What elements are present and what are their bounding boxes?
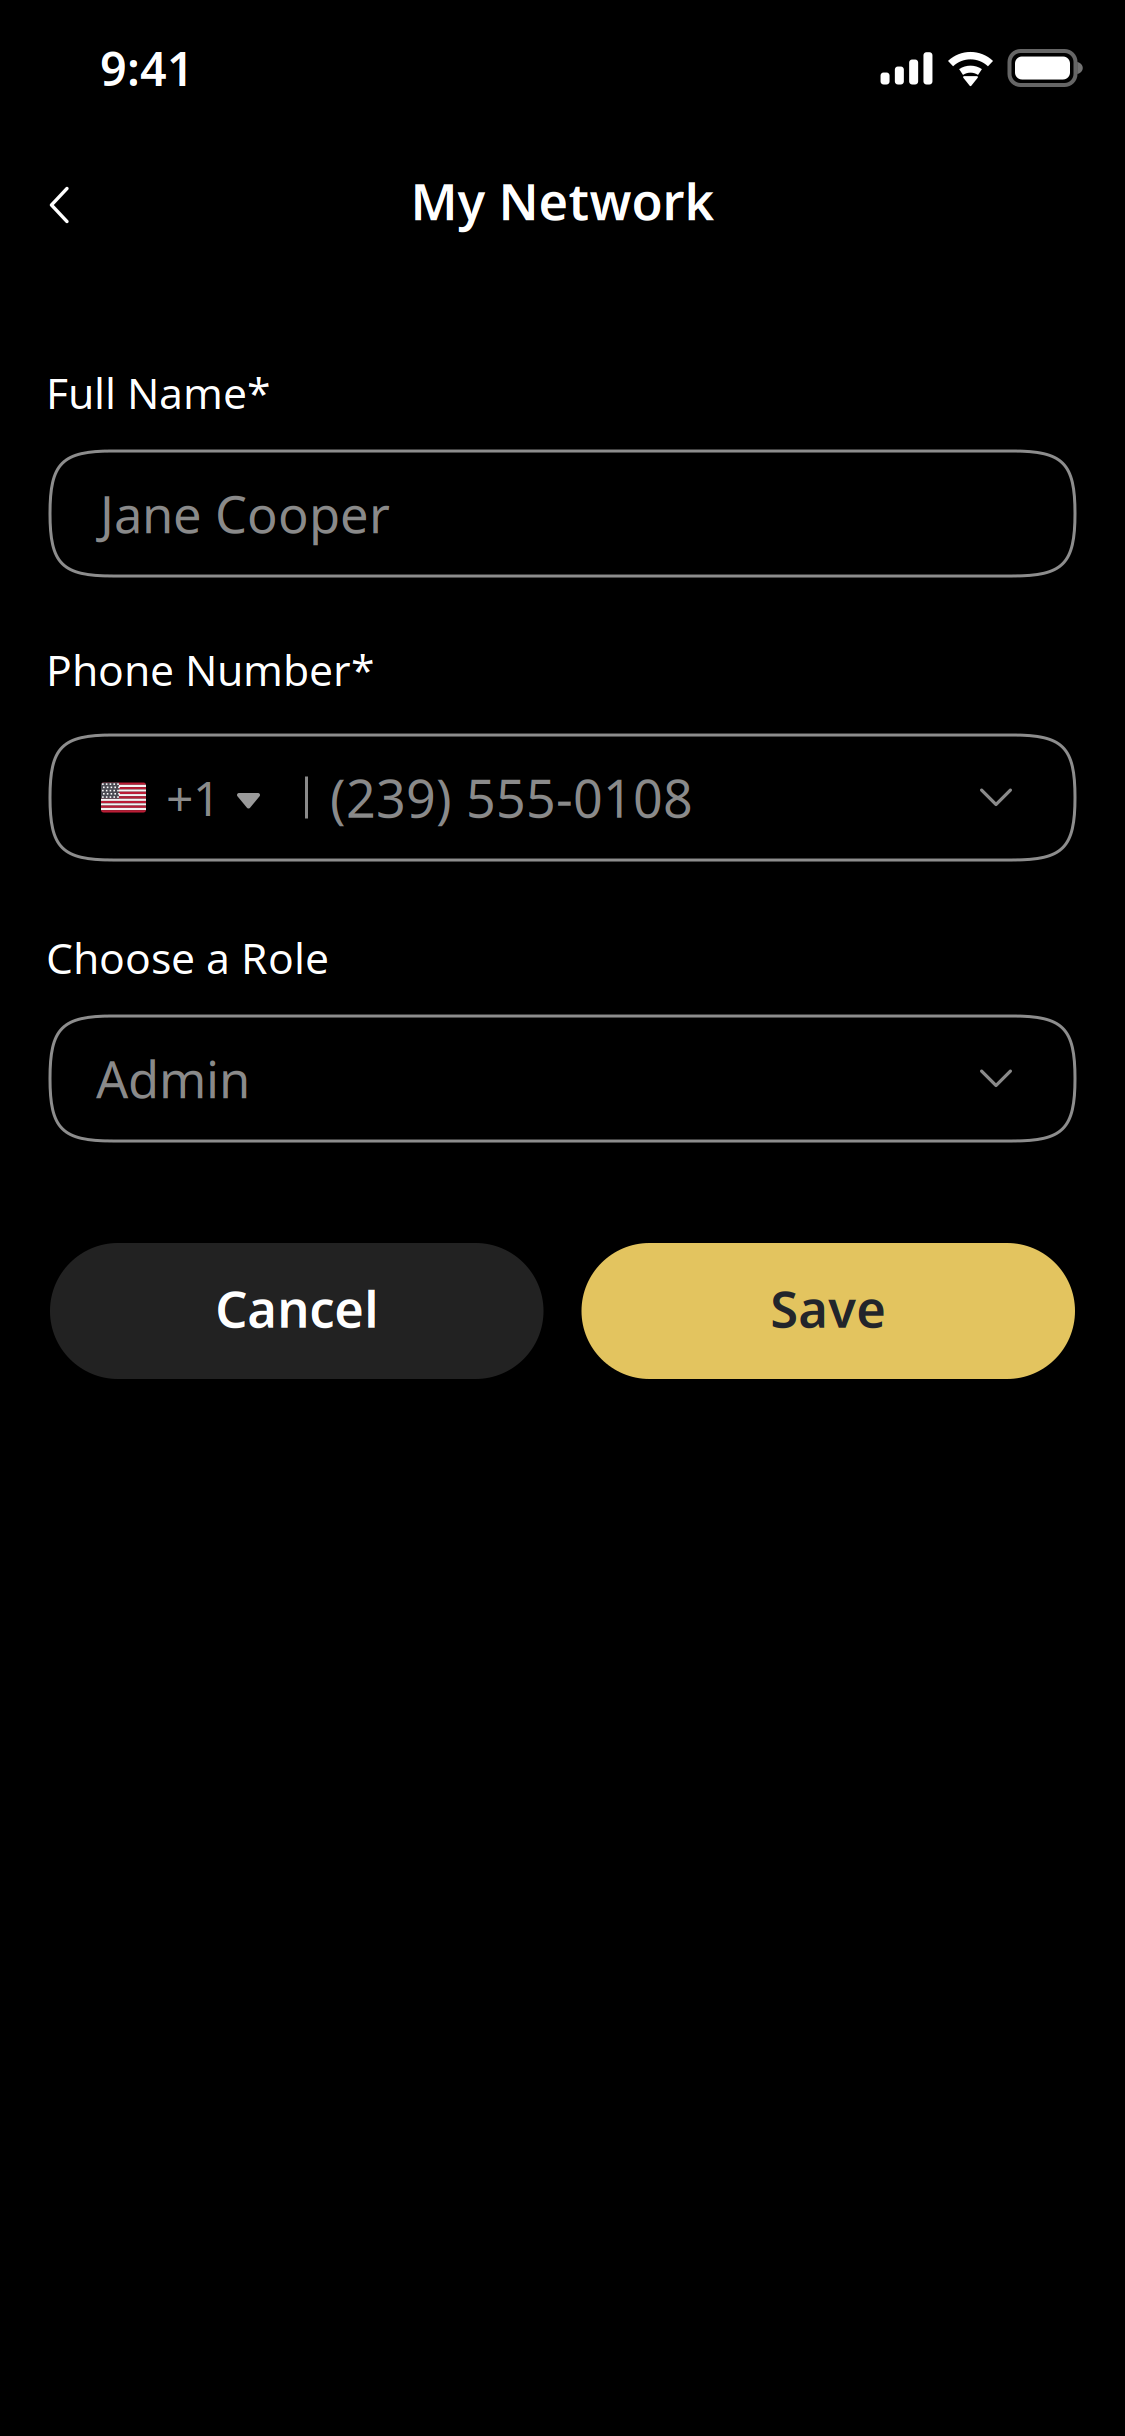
button[interactable]: Save xyxy=(581,1243,1075,1379)
button[interactable]: +1 xyxy=(50,735,1075,860)
staticText: Jane Cooper xyxy=(100,480,390,547)
button[interactable]: Back xyxy=(15,152,103,249)
staticText: Save xyxy=(770,1274,886,1342)
staticText: My Network xyxy=(410,167,714,234)
button[interactable]: Admin xyxy=(50,1016,1075,1141)
staticText: Phone Number* xyxy=(46,641,375,698)
staticText: Choose a Role xyxy=(46,929,329,986)
staticText: Admin xyxy=(96,1045,250,1112)
button[interactable]: Cancel xyxy=(50,1243,543,1379)
staticText: +1 xyxy=(166,766,220,829)
staticText: (239) 555-0108 xyxy=(330,763,693,832)
staticText: Full Name* xyxy=(46,364,271,421)
staticText: 9:41 xyxy=(100,37,194,99)
button[interactable]: Jane Cooper xyxy=(50,451,1075,576)
staticText: Cancel xyxy=(215,1274,378,1342)
